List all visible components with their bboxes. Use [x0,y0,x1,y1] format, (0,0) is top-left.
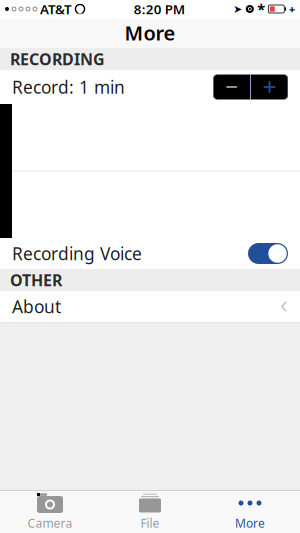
button[interactable]: Increase [251,74,288,99]
staticText: Recording Voice [12,242,142,265]
staticText: More [235,515,265,531]
staticText: More [124,19,175,46]
staticText: OTHER [10,269,62,291]
button[interactable]: About [0,291,300,322]
staticText: * [257,0,265,19]
button[interactable]: File [100,491,200,533]
button[interactable]: Recording Voice [0,238,300,269]
staticText: Record: 1 min [12,75,125,98]
staticText: ➤ [233,3,242,15]
staticText: About [12,295,61,318]
staticText: RECORDING [10,48,105,70]
staticText: 8:20 PM [134,0,185,18]
button[interactable]: More [200,491,300,533]
staticText: Camera [27,515,72,531]
button[interactable]: Camera [0,491,100,533]
staticText: + [289,2,295,16]
staticText: AT&T [40,0,72,18]
button[interactable]: Decrease [213,74,250,99]
staticText: File [140,515,159,531]
